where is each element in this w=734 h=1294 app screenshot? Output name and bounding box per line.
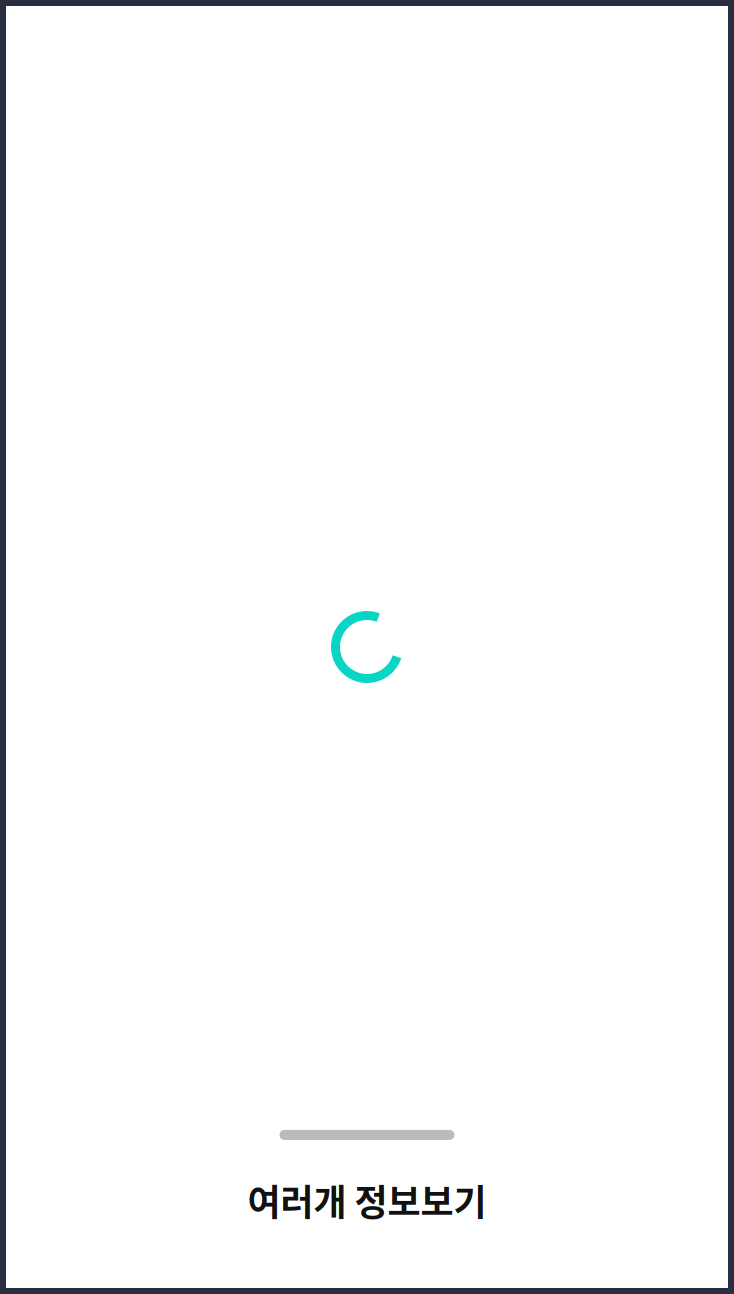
staticText: 여러개 정보보기 [247,1174,486,1226]
button[interactable]: 여러개 정보보기 [0,1164,734,1236]
